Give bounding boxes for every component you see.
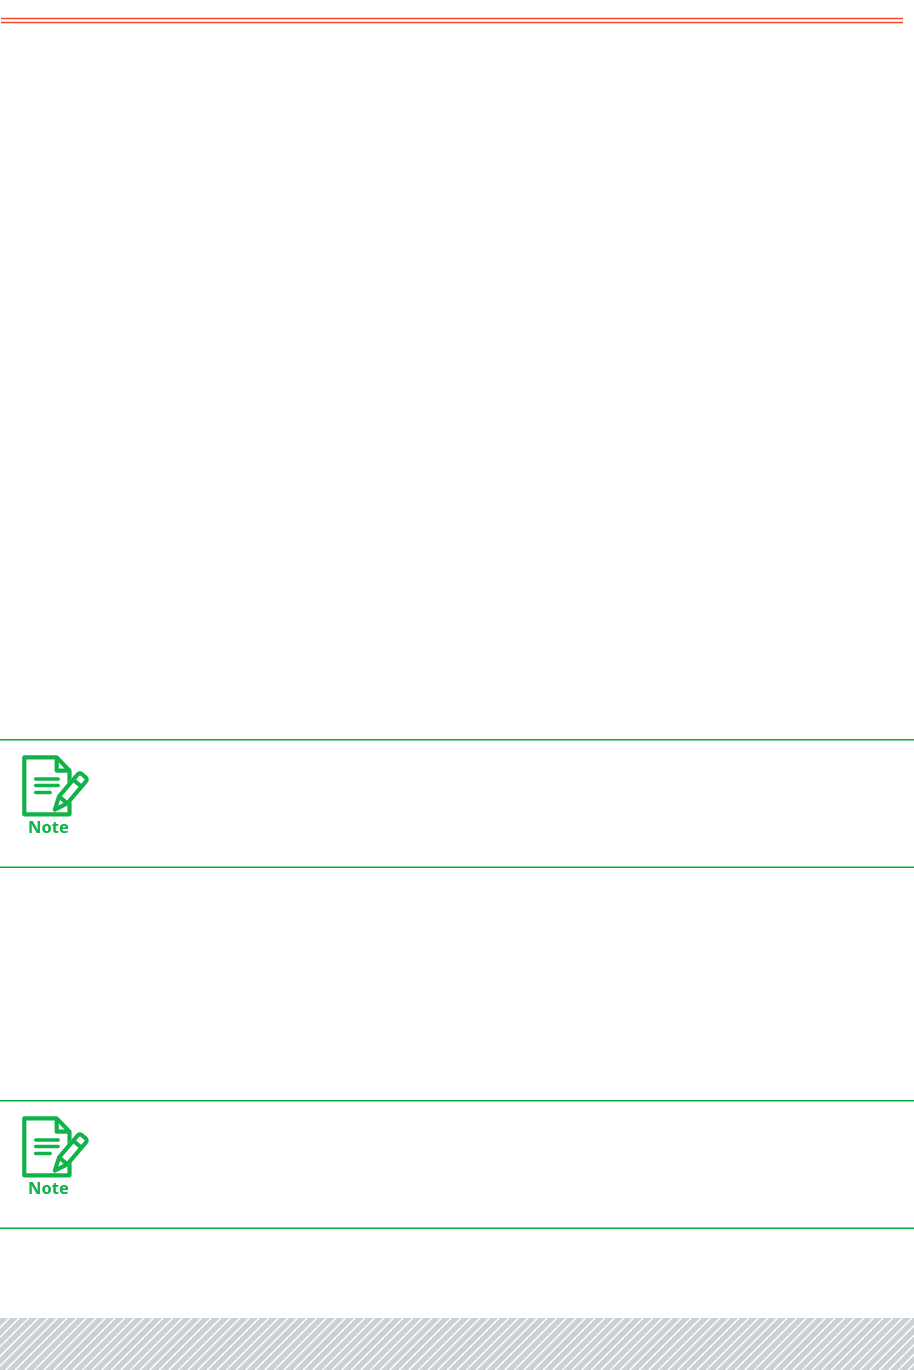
- button[interactable]: Note: [20, 752, 92, 834]
- staticText: Note: [28, 1176, 69, 1198]
- button[interactable]: Note: [20, 1113, 92, 1195]
- button[interactable]: Note: [0, 739, 914, 868]
- staticText: Note: [28, 815, 69, 837]
- button[interactable]: Note: [0, 1100, 914, 1229]
